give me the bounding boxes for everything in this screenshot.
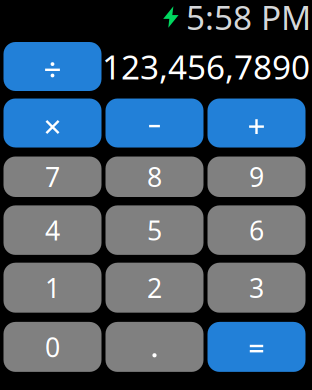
staticText: 9 [249,159,264,194]
staticText: 5 [147,212,162,248]
button[interactable]: 8 [105,156,203,197]
staticText: 1 [45,270,60,305]
button[interactable]: Minus [105,98,203,147]
staticText: 0 [45,329,60,365]
button[interactable]: 4 [3,205,101,255]
button[interactable]: Decimal point [105,322,203,372]
button[interactable]: 0 [3,322,101,372]
button[interactable]: Multiply [3,98,101,147]
button[interactable]: 6 [207,205,305,255]
staticText: 7 [45,159,60,194]
button[interactable]: 5 [105,205,203,255]
button[interactable]: 3 [207,263,305,313]
staticText: 6 [249,212,264,248]
button[interactable]: 9 [207,156,305,197]
button[interactable]: Divide [3,42,101,91]
button[interactable]: 1 [3,263,101,313]
staticText: 2 [147,270,162,305]
staticText: 4 [45,212,60,248]
staticText: 5:58 PM [186,0,311,39]
staticText: 123,456,7890 [102,44,310,89]
staticText: 8 [147,159,162,194]
button[interactable]: Plus [207,98,305,147]
button[interactable]: 2 [105,263,203,313]
button[interactable]: 7 [3,156,101,197]
staticText: 3 [249,270,264,305]
button[interactable]: Equals [207,322,305,372]
